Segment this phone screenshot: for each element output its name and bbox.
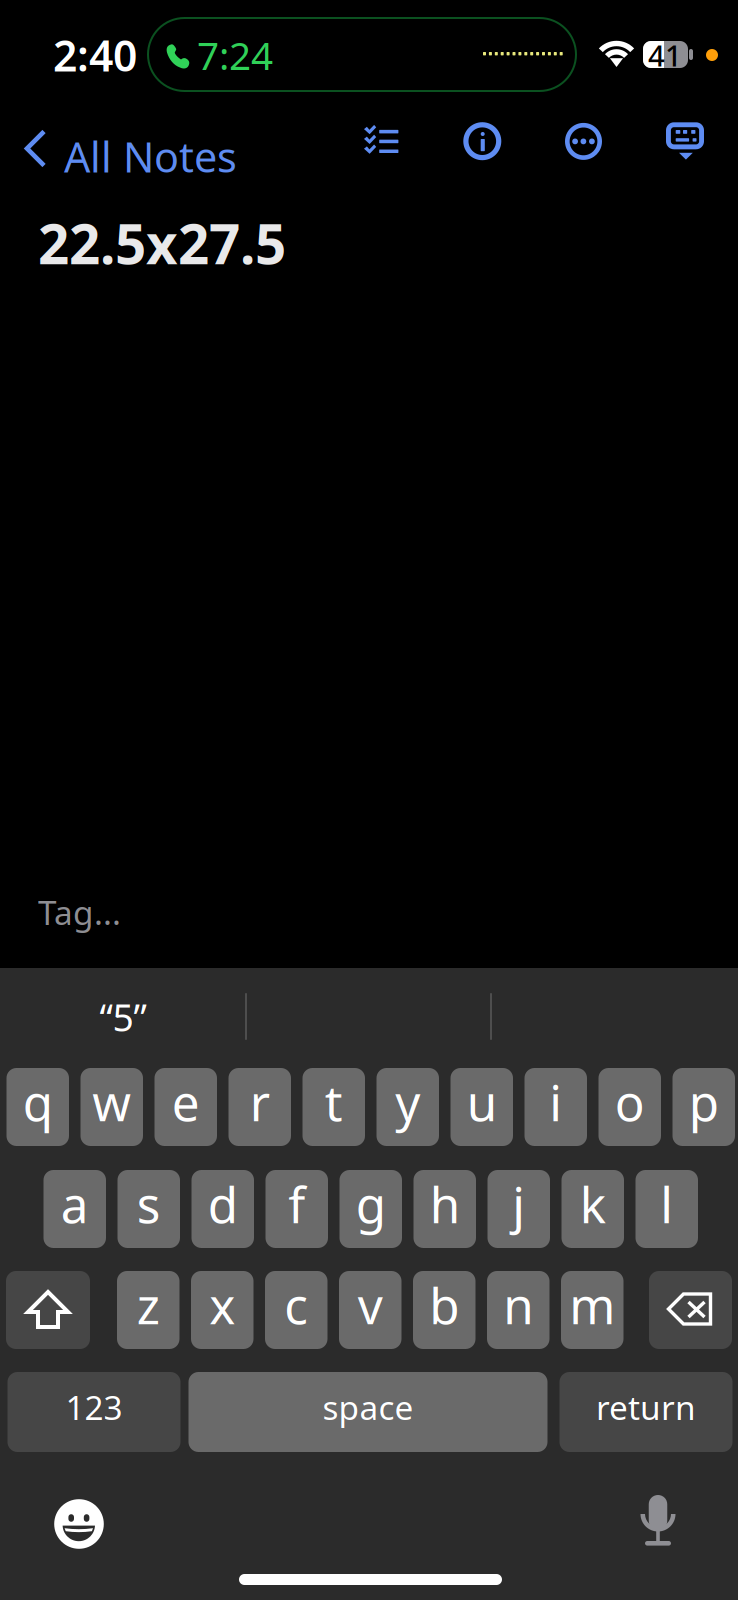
button[interactable]: i: [524, 1068, 587, 1146]
button[interactable]: Info: [454, 113, 510, 169]
button[interactable]: “5”: [3, 972, 243, 1062]
staticText: 2:40: [53, 27, 137, 83]
staticText: “5”: [99, 992, 146, 1042]
staticText: r: [250, 1069, 270, 1135]
button[interactable]: b: [413, 1271, 475, 1349]
staticText: All Notes: [64, 129, 237, 184]
staticText: f: [288, 1171, 305, 1237]
button[interactable]: a: [43, 1170, 106, 1248]
staticText: z: [137, 1272, 160, 1338]
staticText: c: [284, 1272, 308, 1338]
staticText: q: [23, 1069, 53, 1135]
staticText: k: [580, 1171, 606, 1237]
button[interactable]: e: [154, 1068, 217, 1146]
staticText: space: [322, 1385, 413, 1429]
staticText: p: [689, 1069, 719, 1135]
staticText: h: [430, 1171, 460, 1237]
staticText: Tag...: [38, 890, 121, 934]
button[interactable]: j: [487, 1170, 550, 1248]
staticText: d: [208, 1171, 238, 1237]
button[interactable]: o: [598, 1068, 661, 1146]
staticText: a: [61, 1171, 89, 1237]
button[interactable]: m: [561, 1271, 623, 1349]
staticText: v: [358, 1272, 383, 1338]
button[interactable]: k: [561, 1170, 624, 1248]
button[interactable]: f: [265, 1170, 328, 1248]
button[interactable]: Delete: [649, 1271, 732, 1349]
staticText: 41: [648, 35, 682, 74]
button[interactable]: h: [413, 1170, 476, 1248]
button[interactable]: y: [376, 1068, 439, 1146]
staticText: s: [137, 1171, 161, 1237]
button[interactable]: Emoji: [41, 1486, 117, 1562]
button[interactable]: All Notes: [10, 107, 225, 177]
button[interactable]: t: [302, 1068, 365, 1146]
staticText: g: [356, 1171, 386, 1237]
button[interactable]: x: [191, 1271, 253, 1349]
button[interactable]: Dictation: [620, 1484, 696, 1560]
button[interactable]: l: [635, 1170, 698, 1248]
staticText: j: [512, 1171, 525, 1237]
staticText: 7:24: [197, 29, 273, 81]
button[interactable]: More: [555, 113, 611, 169]
staticText: 123: [65, 1385, 122, 1429]
staticText: n: [503, 1272, 533, 1338]
staticText: t: [325, 1069, 343, 1135]
staticText: o: [615, 1069, 645, 1135]
button[interactable]: w: [80, 1068, 143, 1146]
button[interactable]: u: [450, 1068, 513, 1146]
staticText: return: [596, 1385, 696, 1429]
button[interactable]: p: [672, 1068, 735, 1146]
staticText: b: [429, 1272, 459, 1338]
button[interactable]: return: [559, 1372, 732, 1452]
staticText: m: [569, 1272, 615, 1338]
staticText: w: [92, 1069, 131, 1135]
button[interactable]: z: [117, 1271, 179, 1349]
button[interactable]: space: [188, 1372, 547, 1452]
button[interactable]: Shift: [6, 1271, 90, 1349]
button[interactable]: n: [487, 1271, 549, 1349]
staticText: i: [549, 1069, 562, 1135]
staticText: 22.5x27.5: [38, 207, 286, 279]
button[interactable]: Checklist: [360, 120, 412, 172]
staticText: x: [209, 1272, 235, 1338]
button[interactable]: q: [6, 1068, 69, 1146]
staticText: y: [395, 1069, 420, 1135]
button[interactable]: d: [191, 1170, 254, 1248]
button[interactable]: r: [228, 1068, 291, 1146]
button[interactable]: s: [117, 1170, 180, 1248]
button[interactable]: g: [339, 1170, 402, 1248]
staticText: u: [467, 1069, 497, 1135]
button[interactable]: v: [339, 1271, 401, 1349]
button[interactable]: c: [265, 1271, 327, 1349]
button[interactable]: 123: [7, 1372, 180, 1452]
staticText: e: [172, 1069, 200, 1135]
button[interactable]: Hide Keyboard: [655, 115, 715, 175]
staticText: l: [660, 1171, 673, 1237]
